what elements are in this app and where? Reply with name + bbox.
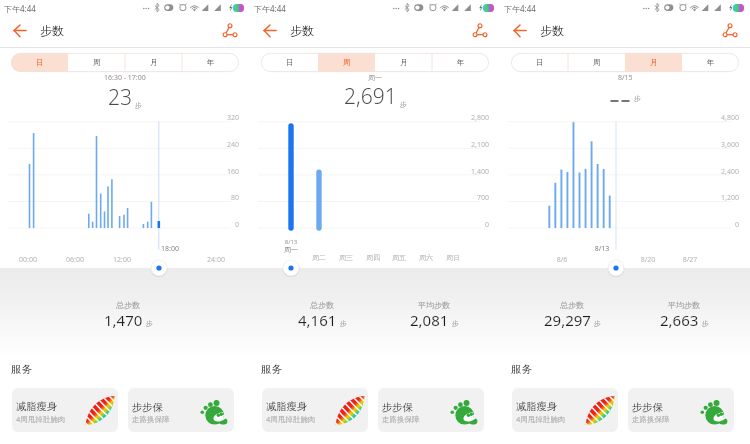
staticText: 00:00 [0,255,58,265]
staticText: 16:30 - 17:00 [104,73,146,83]
staticText: 1,400 [471,167,489,177]
staticText: 步 [400,100,407,109]
staticText: 步 [146,319,153,328]
staticText: 2,100 [471,140,489,150]
staticText: 减脂瘦身 [516,400,558,413]
staticText: 周五 [369,253,429,262]
staticText: 服务 [511,363,532,376]
staticText: 步 [634,94,641,103]
button[interactable]: Back [258,20,282,42]
staticText: 年 [207,58,215,67]
staticText: 日 [536,58,544,67]
button[interactable]: 步步保 [628,388,734,432]
staticText: 步数 [290,23,314,38]
staticText: 8/6 [532,255,592,265]
button[interactable]: Share [718,20,740,42]
staticText: 8/20 [618,255,678,265]
button[interactable]: Share [218,20,240,42]
staticText: 4周甩掉肚腩肉 [16,414,66,424]
staticText: 服务 [261,363,282,376]
button[interactable]: 年 [682,53,739,72]
button[interactable]: Back [508,20,532,42]
staticText: 2,400 [721,167,739,177]
staticText: 步 [452,319,459,328]
staticText: 320 [226,113,239,123]
staticText: 走路换保障 [132,415,170,424]
staticText: 2,081 [410,310,449,330]
staticText: 走路换保障 [632,415,670,424]
staticText: 1,470 [104,310,143,330]
button[interactable]: 减脂瘦身 [12,388,118,432]
staticText: 周四 [343,253,403,262]
staticText: 平均步数 [668,300,700,310]
button[interactable]: 年 [432,53,489,72]
button[interactable]: Share [468,20,490,42]
button[interactable]: 月 [375,53,432,72]
button[interactable]: 周 [68,53,125,72]
staticText: 总步数 [310,300,334,310]
button[interactable]: 日 [11,53,68,72]
staticText: 服务 [11,363,32,376]
staticText: 周 [593,58,601,67]
staticText: 总步数 [560,300,584,310]
staticText: 下午4:44 [504,3,536,14]
staticText: 周一 [261,245,321,254]
staticText: 3,600 [721,140,739,150]
button[interactable]: Back [8,20,32,42]
staticText: 8/13 [261,238,321,246]
staticText: 1,200 [721,193,739,203]
staticText: 步数 [40,23,64,38]
staticText: 下午4:44 [254,3,286,14]
staticText: 240 [226,140,239,150]
staticText: 步步保 [382,401,413,414]
staticText: 步 [594,319,601,328]
staticText: 周三 [316,253,376,262]
staticText: 0 [234,220,239,230]
staticText: 步步保 [632,401,663,414]
staticText: 月 [400,58,408,67]
staticText: 700 [476,193,489,203]
staticText: 18:00 [140,244,200,254]
staticText: 0 [734,220,739,230]
staticText: 06:00 [45,255,105,265]
staticText: 4周甩掉肚腩肉 [516,414,566,424]
staticText: 周六 [396,253,456,262]
staticText: 减脂瘦身 [16,400,58,413]
button[interactable]: 月 [625,53,682,72]
staticText: 总步数 [116,300,140,310]
button[interactable]: 步步保 [128,388,234,432]
button[interactable]: 减脂瘦身 [262,388,368,432]
button[interactable]: 年 [182,53,239,72]
staticText: 走路换保障 [382,415,420,424]
staticText: 平均步数 [418,300,450,310]
button[interactable]: 减脂瘦身 [512,388,618,432]
staticText: 周 [93,58,101,67]
button[interactable]: 周 [568,53,625,72]
staticText: 日 [36,58,44,67]
staticText: 29,297 [544,310,591,330]
staticText: 4,800 [721,113,739,123]
staticText: 周日 [423,253,483,262]
staticText: 4,161 [298,310,337,330]
staticText: 2,663 [660,310,699,330]
staticText: 2,691 [344,82,397,111]
staticText: 8/27 [660,255,720,265]
staticText: 年 [457,58,465,67]
staticText: 周二 [289,253,349,262]
staticText: 月 [650,58,658,67]
staticText: 4周甩掉肚腩肉 [266,414,316,424]
staticText: 0 [484,220,489,230]
button[interactable]: 日 [261,53,318,72]
staticText: 年 [707,58,715,67]
button[interactable]: 日 [511,53,568,72]
staticText: 23 [108,83,132,112]
staticText: 8/13 [572,244,632,254]
staticText: 12:00 [92,255,152,265]
button[interactable]: 月 [125,53,182,72]
staticText: 8/15 [618,73,633,83]
staticText: 步步保 [132,401,163,414]
staticText: 周一 [368,73,382,82]
button[interactable]: 步步保 [378,388,484,432]
button[interactable]: 周 [318,53,375,72]
staticText: 步 [340,319,347,328]
